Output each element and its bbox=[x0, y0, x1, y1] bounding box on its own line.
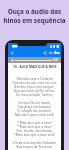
button[interactable]: Reproduzir bbox=[10, 58, 14, 62]
button[interactable]: Volume bbox=[48, 50, 53, 55]
button[interactable]: Compartilhar bbox=[42, 50, 47, 55]
staticText: 16 - ALGO MAIS QUE A NEVE bbox=[13, 65, 57, 69]
staticText: 2:41 bbox=[53, 58, 59, 62]
staticText: 1 Bendito seja o Cordeiro, Que morreu po… bbox=[12, 77, 57, 149]
staticText: Aa bbox=[54, 50, 60, 56]
button[interactable]: Tamanho da fonte bbox=[54, 50, 60, 56]
button[interactable]: Voltar bbox=[9, 50, 15, 56]
staticText: Ouça o áudio das hinos em sequência bbox=[3, 7, 66, 25]
